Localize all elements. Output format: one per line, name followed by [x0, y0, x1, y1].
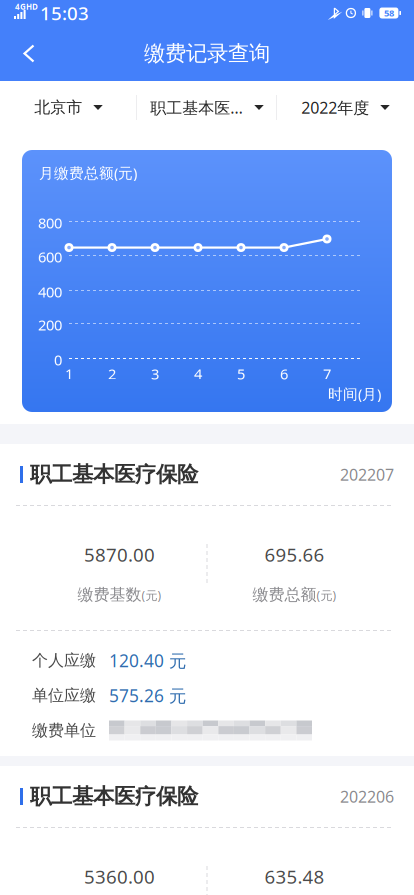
staticText: 4GHD [15, 1, 38, 12]
staticText: 800 [38, 213, 62, 232]
staticText: 2 [108, 364, 116, 383]
staticText: 职工基本医… [150, 97, 243, 118]
staticText: 时间(月) [328, 384, 381, 403]
staticText: 1 [65, 364, 73, 383]
staticText: 400 [38, 282, 62, 301]
staticText: 缴费基数 [77, 585, 141, 604]
staticText: 职工基本医疗保险 [30, 783, 198, 810]
staticText: (元) [141, 587, 161, 603]
staticText: 职工基本医疗保险 [30, 461, 198, 488]
button[interactable]: Back [6, 30, 52, 76]
staticText: 2022年度 [301, 97, 369, 118]
button[interactable]: 北京市 [0, 81, 137, 134]
staticText: 120.40 元 [109, 649, 186, 672]
staticText: 635.48 [264, 864, 324, 889]
staticText: 695.66 [264, 542, 324, 567]
staticText: 单位应缴 [32, 686, 96, 705]
staticText: 6 [280, 364, 288, 383]
staticText: 缴费总额 [252, 585, 316, 604]
staticText: 15:03 [40, 1, 89, 25]
staticText: 月缴费总额(元) [39, 163, 137, 182]
button[interactable]: 2022年度 [277, 81, 414, 134]
staticText: 7 [323, 364, 331, 383]
staticText: 575.26 元 [109, 684, 186, 707]
staticText: 5360.00 [84, 864, 155, 889]
staticText: 3 [151, 364, 159, 383]
staticText: 4 [194, 364, 202, 383]
staticText: 58 [384, 7, 394, 19]
staticText: 缴费记录查询 [144, 40, 270, 67]
staticText: 200 [38, 315, 62, 334]
staticText: 5870.00 [84, 542, 155, 567]
staticText: 北京市 [34, 98, 82, 117]
button[interactable]: 职工基本医… [137, 81, 277, 134]
staticText: 202206 [340, 786, 394, 807]
staticText: 个人应缴 [32, 651, 96, 670]
staticText: 0 [54, 350, 62, 369]
staticText: 600 [38, 247, 62, 266]
staticText: 缴费单位 [32, 721, 96, 740]
staticText: (元) [316, 587, 336, 603]
staticText: 5 [237, 364, 245, 383]
staticText: 202207 [340, 464, 394, 485]
